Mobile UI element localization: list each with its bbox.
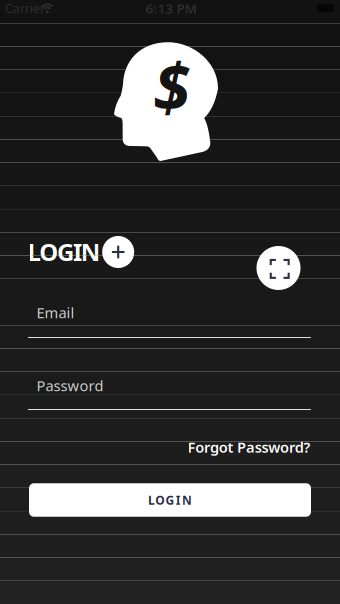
- staticText: Forgot Password?: [187, 437, 310, 457]
- staticText: $: [153, 42, 190, 130]
- staticText: Email: [36, 303, 74, 322]
- staticText: Carrier: [5, 0, 45, 16]
- staticText: Password: [36, 376, 103, 395]
- staticText: 6:13 PM: [145, 0, 196, 17]
- button[interactable]: Forgot Password?: [140, 437, 310, 457]
- button[interactable]: Email: [28, 295, 311, 338]
- button[interactable]: Password: [28, 367, 311, 410]
- staticText: LOGIN: [148, 492, 192, 508]
- staticText: LOGIN: [27, 236, 101, 268]
- button[interactable]: [256, 246, 300, 290]
- button[interactable]: [102, 236, 134, 268]
- button[interactable]: LOGIN: [29, 483, 311, 517]
